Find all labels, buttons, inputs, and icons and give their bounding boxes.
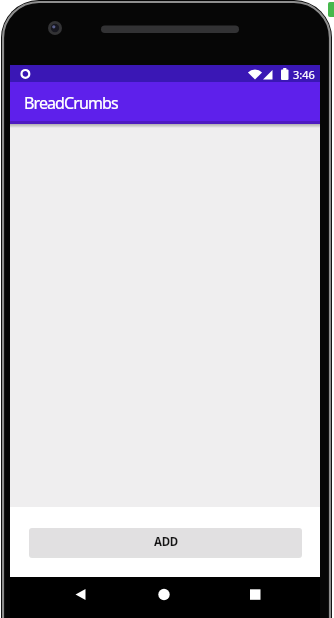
staticText: ADD bbox=[154, 534, 178, 550]
button[interactable] bbox=[114, 577, 217, 618]
staticText: BreadCrumbs bbox=[24, 92, 118, 114]
button[interactable] bbox=[10, 577, 114, 618]
staticText: 3:46 bbox=[293, 67, 315, 82]
button[interactable]: ADD bbox=[29, 528, 302, 556]
button[interactable] bbox=[217, 577, 320, 618]
